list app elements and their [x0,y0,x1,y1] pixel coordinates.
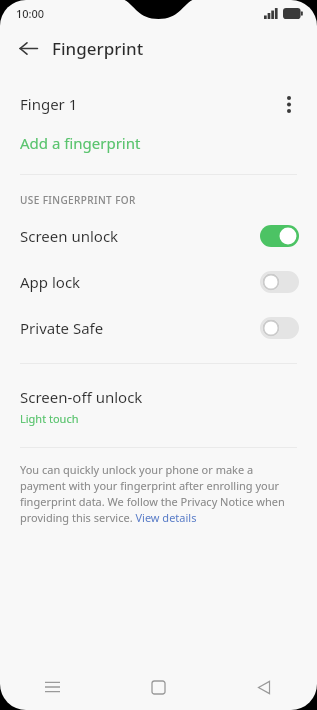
button[interactable]: Back [211,664,317,710]
staticText: You can quickly unlock your phone or mak… [20,462,297,525]
staticText: Screen unlock [20,226,119,246]
button[interactable]: More options [273,88,305,120]
button[interactable]: Add a fingerprint [0,124,317,162]
staticText: Screen-off unlock [20,387,143,407]
button[interactable]: Screen-off unlock [0,364,317,447]
staticText: USE FINGERPRINT FOR [20,193,136,207]
button[interactable]: Back [8,28,48,68]
staticText: Add a fingerprint [20,133,141,153]
staticText: Light touch [20,411,79,426]
staticText: 10:00 [16,6,45,21]
button[interactable]: Off [260,271,299,293]
button[interactable]: Off [260,317,299,339]
button[interactable]: Finger 1 [0,84,317,124]
button[interactable]: On [260,225,299,247]
staticText: Private Safe [20,318,104,338]
button[interactable]: Recents [0,664,105,710]
staticText: Finger 1 [20,94,78,114]
staticText: App lock [20,272,81,292]
button[interactable]: Screen unlock [0,213,317,259]
button[interactable]: Home [105,664,211,710]
button[interactable]: App lock [0,259,317,305]
button[interactable]: Private Safe [0,305,317,351]
staticText: Fingerprint [52,37,144,60]
